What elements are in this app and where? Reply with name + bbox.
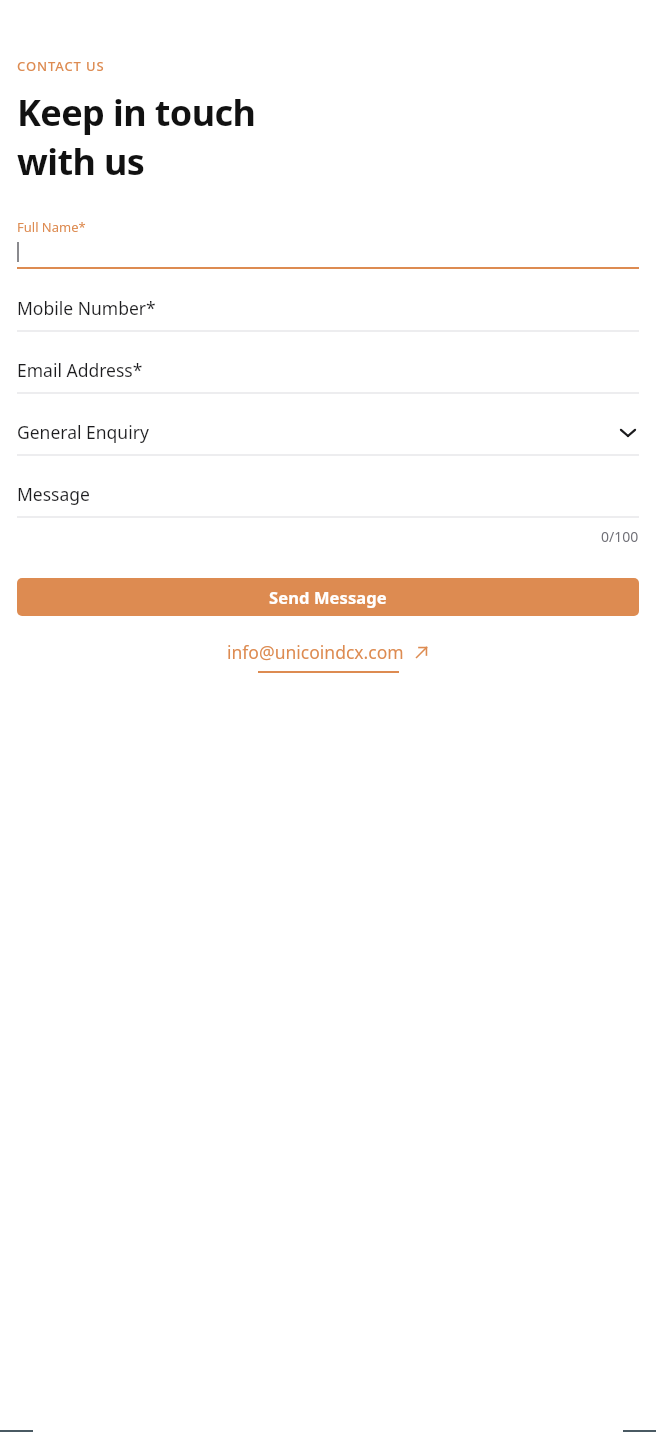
staticText: Mobile Number* [17, 296, 156, 320]
button[interactable]: Full Name* [17, 218, 639, 269]
button[interactable]: Email Address* [17, 351, 639, 394]
other: Expand enquiry type [617, 421, 639, 443]
button[interactable]: Mobile Number* [17, 289, 639, 332]
staticText: 0/100 [601, 527, 639, 546]
staticText: General Enquiry [17, 420, 617, 444]
staticText: Message [17, 482, 90, 506]
other: Open email link [414, 645, 429, 660]
staticText: with us [17, 137, 145, 186]
button[interactable]: Message [17, 475, 639, 518]
button[interactable]: Send Message [17, 578, 639, 616]
staticText: Send Message [269, 586, 387, 608]
button[interactable]: CONTACT US [17, 57, 105, 75]
button[interactable]: info@unicoindcx.com [227, 640, 429, 664]
button[interactable]: General Enquiry [17, 413, 639, 456]
staticText: Full Name* [17, 218, 86, 236]
staticText: info@unicoindcx.com [227, 640, 404, 664]
staticText: Email Address* [17, 358, 143, 382]
staticText: Keep in touch [17, 88, 256, 137]
